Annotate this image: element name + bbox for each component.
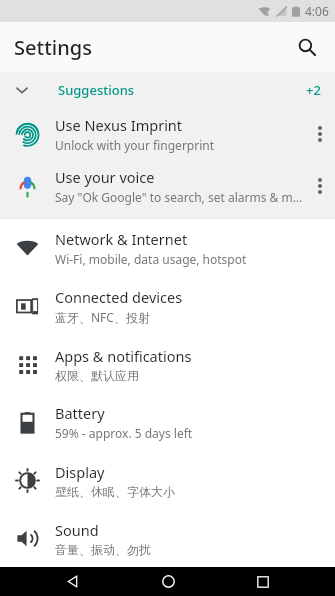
staticText: 59% - approx. 5 days left: [55, 425, 193, 441]
button[interactable]: Network & Internet: [0, 219, 335, 277]
staticText: Sound: [55, 520, 99, 540]
button[interactable]: Search: [287, 27, 327, 67]
staticText: Wi-Fi, mobile, data usage, hotspot: [55, 251, 247, 267]
button[interactable]: More options: [305, 108, 335, 160]
button[interactable]: Apps & notifications: [0, 335, 335, 393]
button[interactable]: Use Nexus Imprint: [0, 108, 335, 160]
button[interactable]: Suggestions: [0, 72, 335, 108]
staticText: 蓝牙、NFC、投射: [55, 309, 150, 325]
button[interactable]: Battery: [0, 393, 335, 451]
staticText: Display: [55, 462, 105, 482]
button[interactable]: Home: [144, 567, 192, 596]
staticText: Connected devices: [55, 287, 183, 307]
staticText: +2: [306, 81, 321, 99]
button[interactable]: Recents: [239, 567, 287, 596]
staticText: Use your voice: [55, 167, 155, 187]
staticText: Say "Ok Google" to search, set alarms & …: [55, 189, 305, 205]
staticText: Battery: [55, 403, 105, 423]
button[interactable]: Back: [48, 567, 96, 596]
staticText: 壁纸、休眠、字体大小: [55, 484, 175, 499]
button[interactable]: Sound: [0, 509, 335, 567]
staticText: Apps & notifications: [55, 346, 192, 366]
button[interactable]: Connected devices: [0, 277, 335, 335]
button[interactable]: Use your voice: [0, 160, 335, 212]
button[interactable]: More options: [305, 160, 335, 212]
staticText: 音量、振动、勿扰: [55, 542, 151, 557]
staticText: Suggestions: [58, 81, 135, 99]
button[interactable]: Display: [0, 451, 335, 509]
staticText: Network & Internet: [55, 229, 188, 249]
staticText: 权限、默认应用: [55, 368, 139, 383]
staticText: Unlock with your fingerprint: [55, 137, 215, 153]
staticText: 4:06: [305, 3, 329, 19]
staticText: Use Nexus Imprint: [55, 115, 183, 135]
staticText: Settings: [14, 34, 92, 61]
